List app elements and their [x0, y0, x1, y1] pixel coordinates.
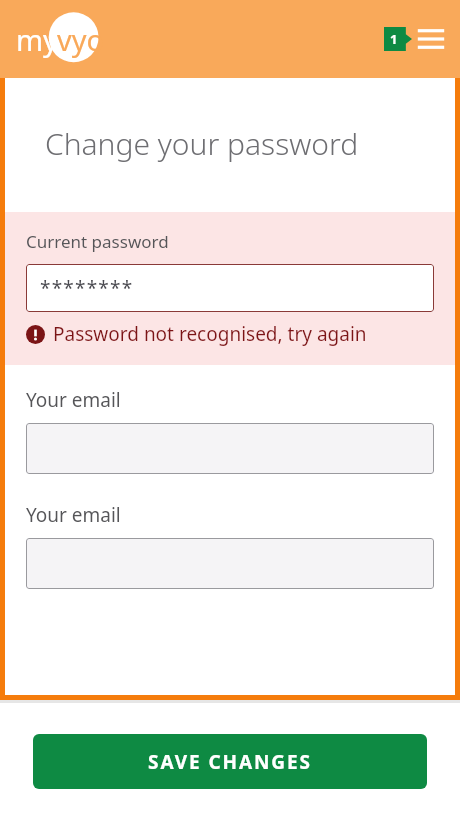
staticText: Your email [26, 387, 121, 413]
staticText: Password not recognised, try again [53, 321, 367, 347]
staticText: 1 [390, 30, 398, 48]
button[interactable]: Your email [26, 538, 434, 589]
staticText: my [16, 20, 58, 59]
button[interactable]: 1 notification [384, 27, 412, 51]
staticText: ******** [40, 275, 134, 301]
button[interactable]: ******** [26, 264, 434, 312]
button[interactable]: Menu [416, 26, 446, 52]
button[interactable]: SAVE CHANGES [33, 734, 427, 789]
staticText: Current password [26, 230, 169, 253]
staticText: Your email [26, 502, 121, 528]
staticText: SAVE CHANGES [148, 749, 312, 775]
staticText: vyo [57, 20, 105, 59]
button[interactable]: myvyo home [16, 10, 118, 68]
staticText: Change your password [45, 123, 455, 164]
button[interactable]: Your email [26, 423, 434, 474]
